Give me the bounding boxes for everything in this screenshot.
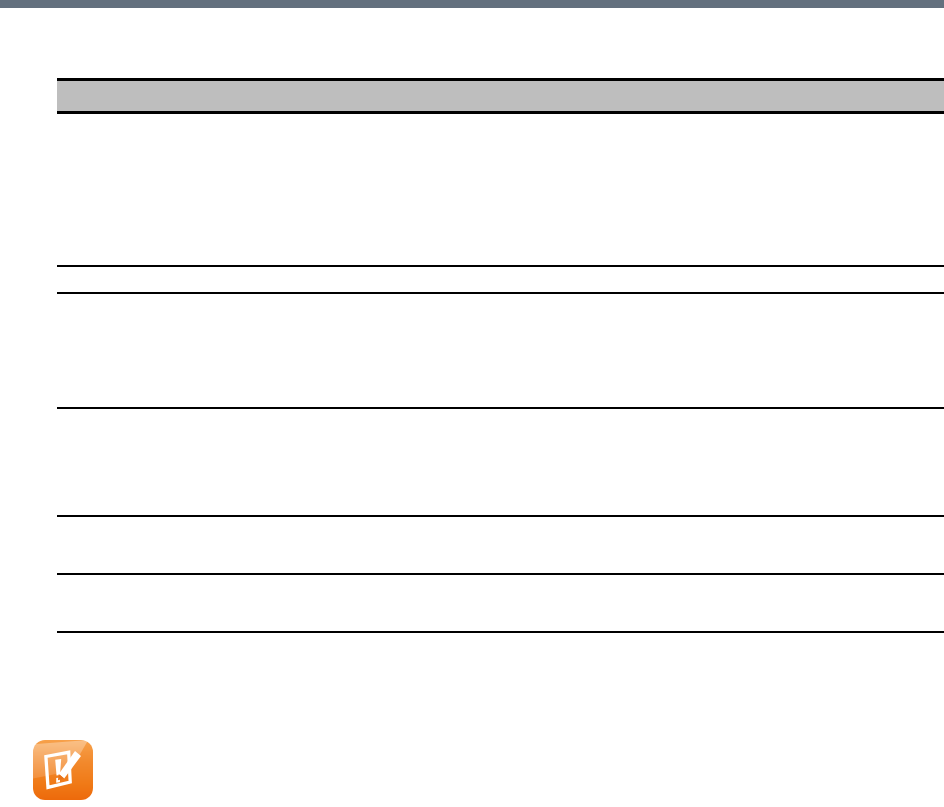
button[interactable]: Edit note bbox=[33, 740, 93, 800]
